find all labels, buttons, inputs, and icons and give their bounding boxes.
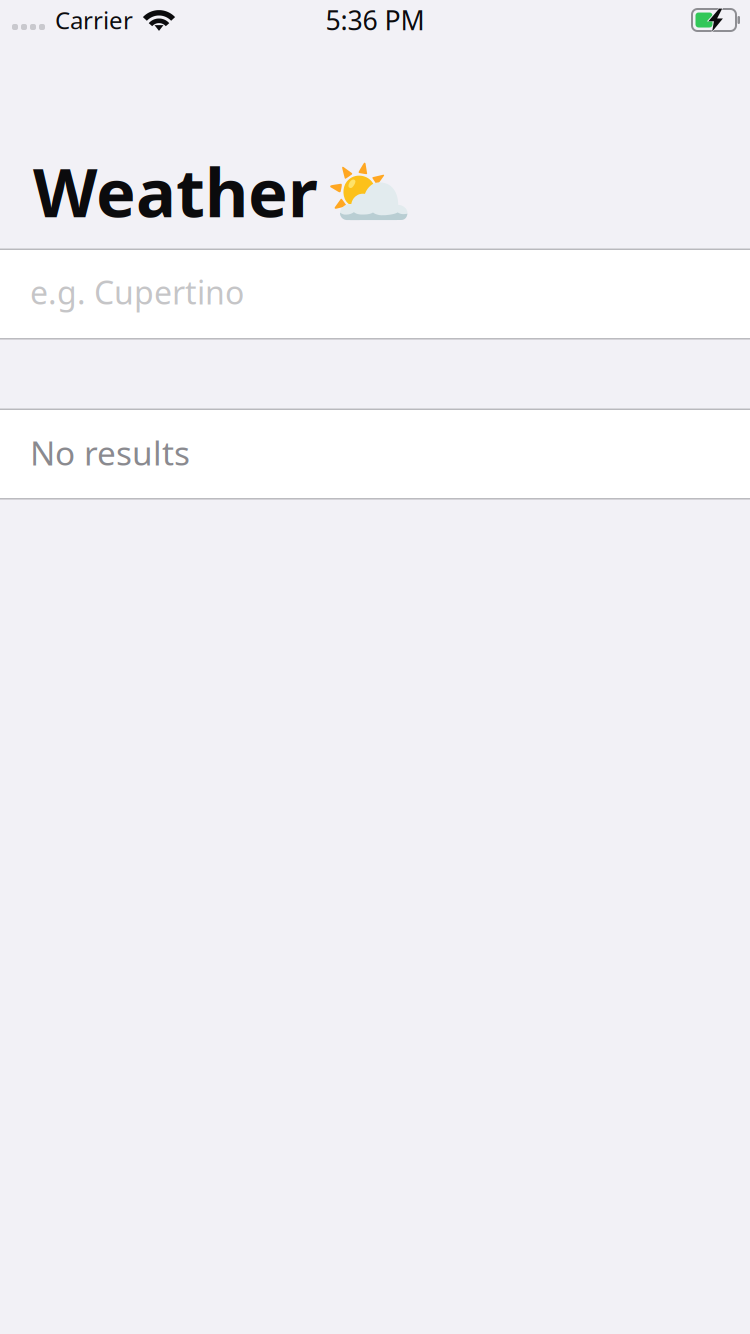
button[interactable]: e.g. Cupertino	[0, 250, 750, 338]
staticText: Weather	[33, 147, 318, 235]
staticText: e.g. Cupertino	[30, 271, 244, 313]
staticText: No results	[30, 430, 190, 475]
staticText: 5:36 PM	[325, 2, 424, 38]
staticText: ⛅️	[325, 153, 413, 234]
staticText: Carrier	[55, 4, 133, 36]
